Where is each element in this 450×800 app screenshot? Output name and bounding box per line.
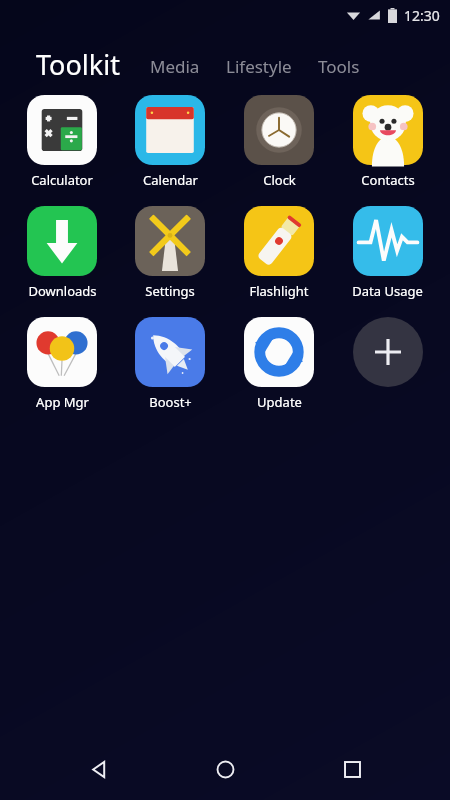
button[interactable]: Add app — [353, 317, 423, 387]
button[interactable]: Downloads — [27, 206, 97, 300]
button[interactable]: Recent apps — [323, 740, 381, 798]
staticText: Flashlight — [249, 282, 309, 300]
button[interactable]: Calendar — [135, 95, 205, 189]
staticText: Data Usage — [352, 282, 423, 300]
staticText: Settings — [145, 282, 195, 300]
staticText: Tools — [318, 55, 360, 78]
staticText: Contacts — [361, 171, 415, 189]
staticText: Calendar — [143, 171, 198, 189]
staticText: Toolkit — [36, 46, 120, 83]
staticText: Update — [257, 393, 302, 411]
button[interactable]: App Mgr — [27, 317, 97, 411]
button[interactable]: Boost+ — [135, 317, 205, 411]
button[interactable]: Settings — [135, 206, 205, 300]
staticText: Calculator — [31, 171, 93, 189]
button[interactable]: Update — [244, 317, 314, 411]
staticText: Media — [150, 55, 200, 78]
button[interactable]: Contacts — [353, 95, 423, 189]
button[interactable]: Toolkit — [36, 46, 120, 83]
button[interactable]: Back — [69, 740, 127, 798]
button[interactable]: Lifestyle — [226, 55, 292, 78]
button[interactable]: Data Usage — [352, 206, 423, 300]
staticText: Boost+ — [149, 393, 192, 411]
staticText: Downloads — [28, 282, 97, 300]
button[interactable]: Tools — [318, 55, 360, 78]
staticText: Clock — [263, 171, 296, 189]
button[interactable]: Calculator — [27, 95, 97, 189]
button[interactable]: Home — [196, 740, 254, 798]
staticText: 12:30 — [404, 6, 440, 25]
staticText: Lifestyle — [226, 55, 292, 78]
button[interactable]: Flashlight — [244, 206, 314, 300]
staticText: App Mgr — [36, 393, 89, 411]
button[interactable]: Clock — [244, 95, 314, 189]
button[interactable]: Media — [150, 55, 200, 78]
